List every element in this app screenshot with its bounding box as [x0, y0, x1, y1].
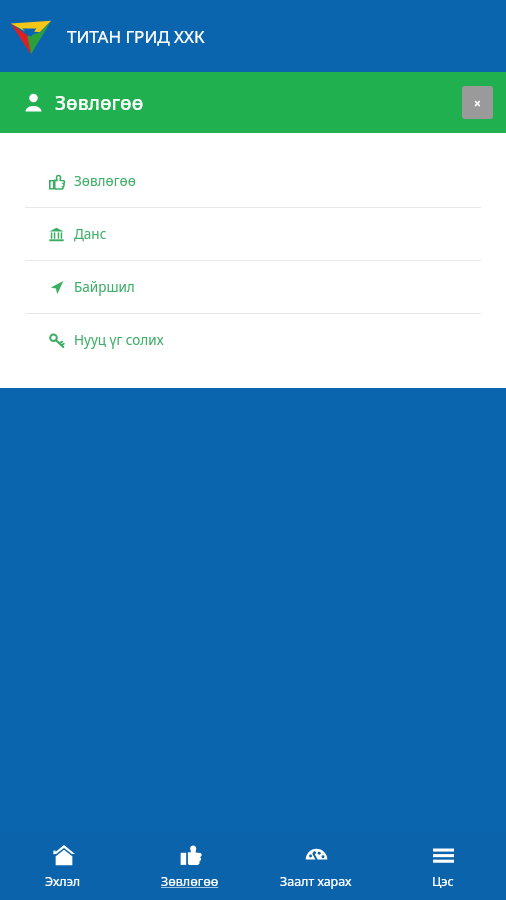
button[interactable]: Данс — [0, 208, 506, 260]
button[interactable]: View readings — [253, 832, 379, 900]
button[interactable]: Нууц үг солих — [0, 314, 506, 366]
button[interactable]: Зөвлөгөө — [0, 155, 506, 207]
staticText: Зөвлөгөө — [74, 172, 136, 190]
staticText: Цэс — [432, 873, 454, 890]
staticText: Зөвлөгөө — [55, 90, 144, 116]
staticText: Эхлэл — [45, 873, 81, 890]
staticText: Байршил — [74, 278, 135, 296]
button[interactable]: Close — [462, 86, 493, 119]
staticText: Данс — [74, 225, 107, 243]
button[interactable]: Menu — [380, 832, 506, 900]
staticText: ТИТАН ГРИД ХХК — [67, 25, 205, 48]
staticText: × — [474, 95, 481, 111]
button[interactable]: Home — [0, 832, 126, 900]
staticText: Заалт харах — [280, 873, 352, 890]
button[interactable]: Advice — [127, 832, 253, 900]
button[interactable]: Байршил — [0, 261, 506, 313]
staticText: Нууц үг солих — [74, 331, 164, 349]
staticText: Зөвлөгөө — [161, 873, 219, 890]
